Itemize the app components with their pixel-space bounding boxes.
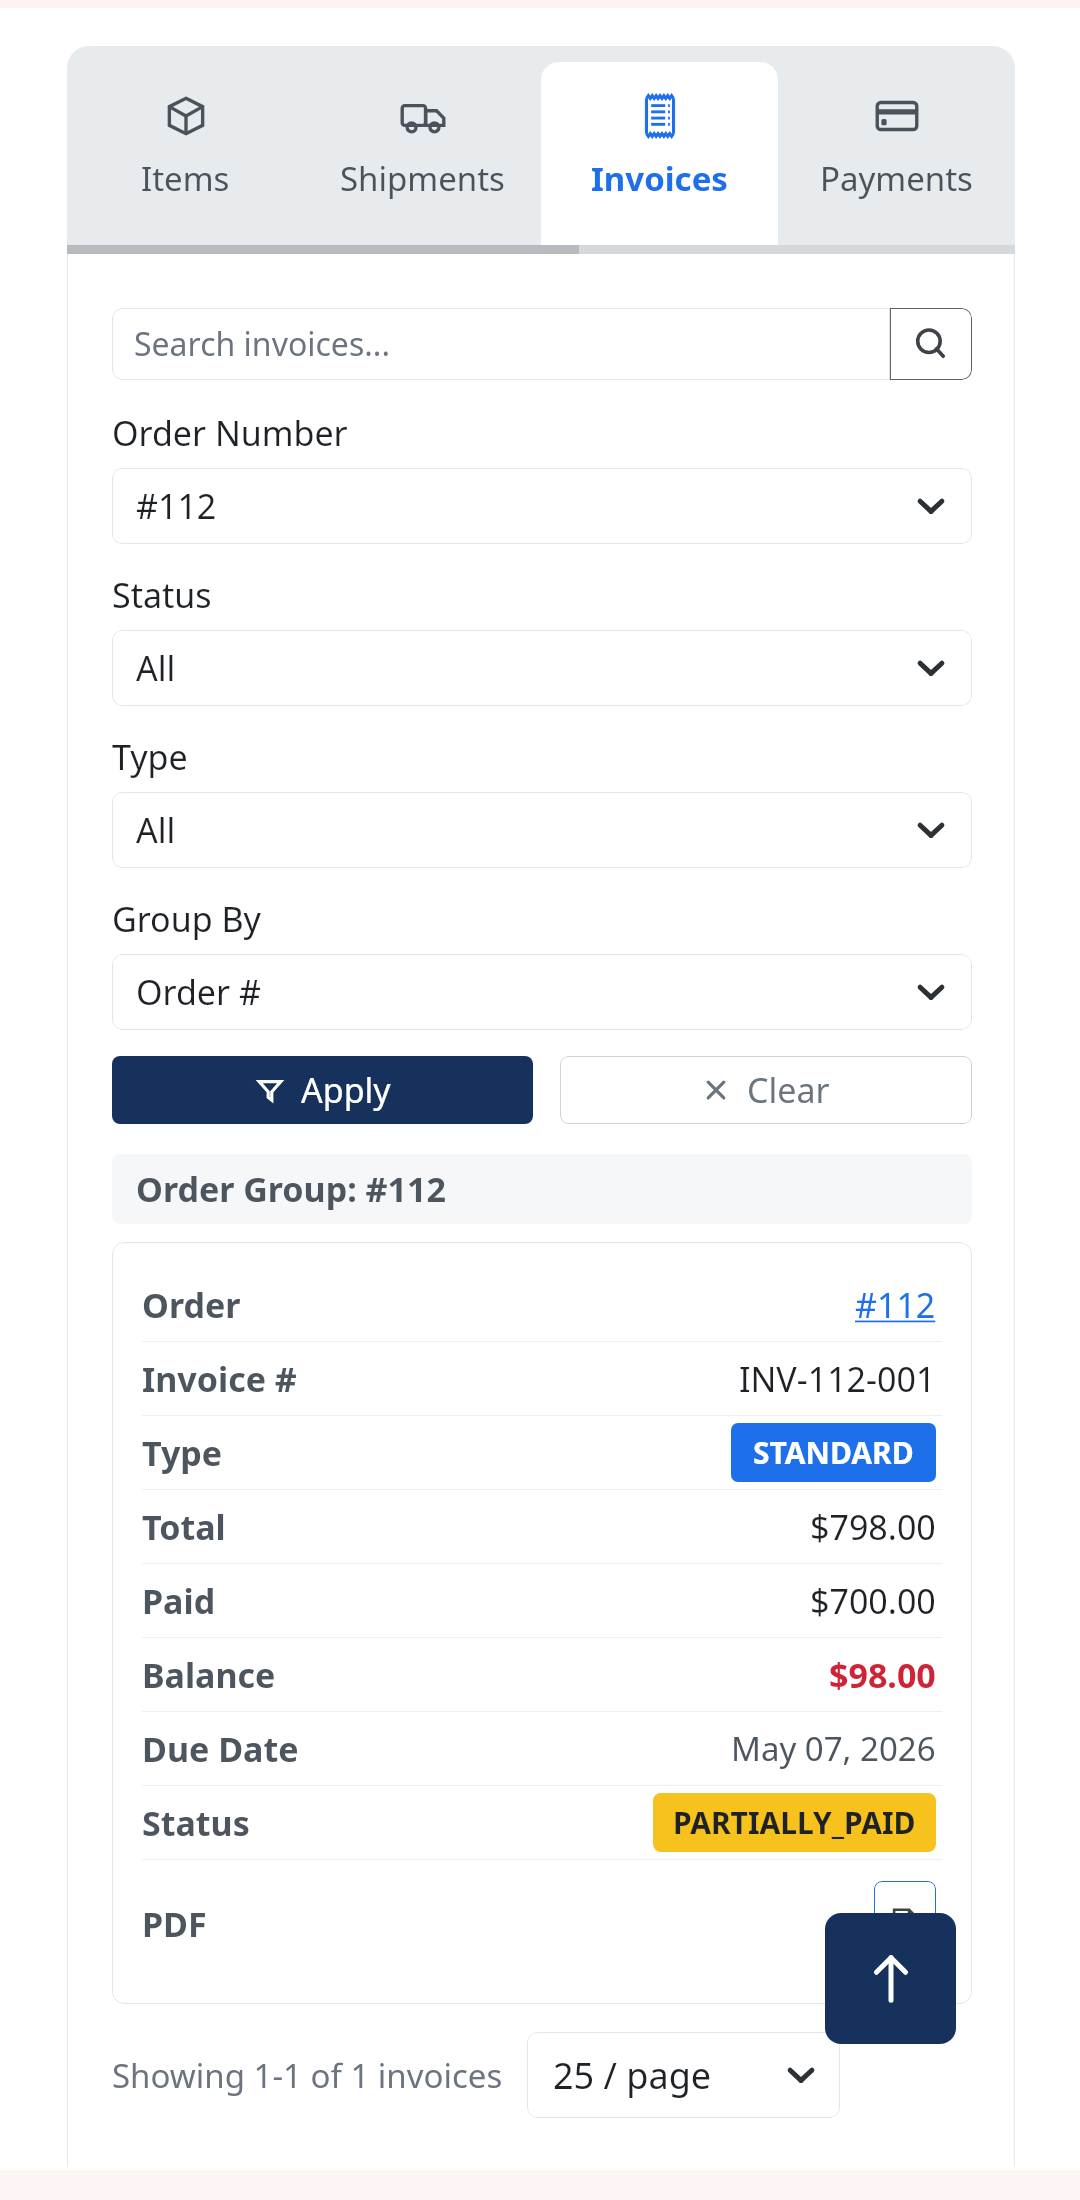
staticText: Total xyxy=(142,1504,810,1550)
staticText: $798.00 xyxy=(810,1504,936,1550)
staticText: Items xyxy=(141,156,230,201)
button[interactable]: Download PDF xyxy=(874,1881,936,1967)
button[interactable]: Shipments xyxy=(304,46,541,254)
button[interactable]: Scroll to top xyxy=(825,1913,956,2044)
staticText: Group By xyxy=(112,896,261,942)
staticText: PDF xyxy=(142,1901,874,1947)
button[interactable]: Apply xyxy=(112,1056,533,1124)
staticText: Apply xyxy=(301,1067,391,1113)
staticText: Order Group: #112 xyxy=(136,1166,446,1212)
staticText: Search invoices... xyxy=(134,322,390,366)
staticText: Payments xyxy=(820,156,973,201)
button[interactable]: Total xyxy=(112,1490,972,1563)
button[interactable]: All xyxy=(112,792,972,868)
button[interactable]: Items xyxy=(67,46,304,254)
button[interactable]: Order Group: #112 xyxy=(112,1154,972,1224)
button[interactable]: Due Date xyxy=(112,1712,972,1785)
button[interactable]: Balance xyxy=(112,1638,972,1711)
button[interactable]: Payments xyxy=(778,46,1015,254)
staticText: All xyxy=(136,807,914,853)
button[interactable]: 25 / page xyxy=(527,2032,840,2118)
staticText: PARTIALLY_PAID xyxy=(673,1802,916,1843)
button[interactable]: Clear xyxy=(560,1056,972,1124)
button[interactable]: All xyxy=(112,630,972,706)
staticText: Order Number xyxy=(112,410,348,456)
staticText: #112 xyxy=(855,1282,936,1328)
staticText: Clear xyxy=(747,1067,830,1113)
staticText: Paid xyxy=(142,1578,810,1624)
staticText: STANDARD xyxy=(753,1432,914,1473)
staticText: Showing 1-1 of 1 invoices xyxy=(112,2053,503,2098)
staticText: #112 xyxy=(136,483,914,529)
button[interactable]: Search xyxy=(890,308,972,380)
staticText: Due Date xyxy=(142,1726,731,1772)
staticText: May 07, 2026 xyxy=(731,1726,936,1771)
staticText: Balance xyxy=(142,1652,829,1698)
button[interactable]: Type xyxy=(112,1416,972,1489)
staticText: $700.00 xyxy=(810,1578,936,1624)
staticText: Status xyxy=(142,1800,653,1846)
button[interactable]: Invoice # xyxy=(112,1342,972,1415)
staticText: Order xyxy=(142,1282,855,1328)
staticText: 25 / page xyxy=(553,2051,784,2100)
staticText: All xyxy=(136,645,914,691)
staticText: $98.00 xyxy=(829,1652,936,1698)
staticText: INV-112-001 xyxy=(739,1356,936,1402)
button[interactable]: #112 xyxy=(112,468,972,544)
button[interactable]: Paid xyxy=(112,1564,972,1637)
button[interactable]: Order # xyxy=(112,954,972,1030)
button[interactable]: Search invoices... xyxy=(112,308,890,380)
staticText: Shipments xyxy=(340,156,505,201)
button[interactable]: Status xyxy=(112,1786,972,1859)
staticText: Type xyxy=(112,734,188,780)
staticText: Order # xyxy=(136,969,914,1015)
staticText: Invoice # xyxy=(142,1356,739,1402)
button[interactable]: Invoices xyxy=(541,46,778,254)
staticText: Invoices xyxy=(591,156,728,201)
staticText: Status xyxy=(112,572,212,618)
staticText: Type xyxy=(142,1430,731,1476)
button[interactable]: Order xyxy=(112,1268,972,1341)
